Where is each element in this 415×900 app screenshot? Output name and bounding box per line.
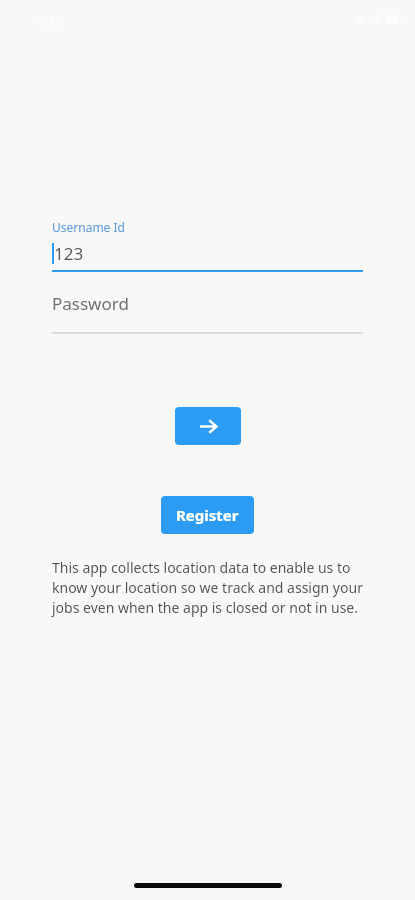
staticText: Username Id	[52, 219, 125, 235]
staticText: Password	[52, 292, 129, 315]
button[interactable]: 123	[52, 240, 363, 266]
staticText: This app collects location data to enabl…	[52, 558, 363, 617]
staticText: Register	[176, 505, 239, 525]
button[interactable]: Password	[52, 286, 363, 320]
button[interactable]: Login	[175, 407, 241, 445]
button[interactable]: Register	[161, 496, 254, 534]
staticText: 123	[54, 242, 84, 265]
